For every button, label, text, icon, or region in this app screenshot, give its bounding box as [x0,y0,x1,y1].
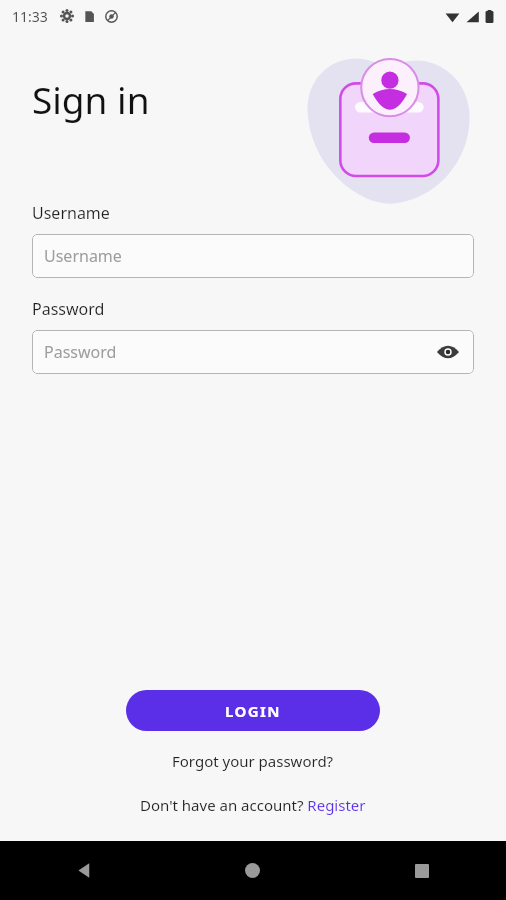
button[interactable]: Home [168,841,337,900]
button[interactable]: Password [32,330,474,374]
staticText: Sign in [32,74,150,124]
staticText: Forgot your password? [172,751,334,771]
staticText: Username [44,245,462,267]
staticText: Don't have an account? Register [140,795,366,815]
staticText: Password [32,298,105,320]
button[interactable]: Back [0,841,168,900]
staticText: LOGIN [225,701,281,721]
button[interactable]: Show password [434,338,462,366]
button[interactable]: Recent apps [337,841,506,900]
button[interactable]: LOGIN [126,690,380,731]
staticText: Password [44,341,434,363]
button[interactable]: Username [32,234,474,278]
button[interactable]: Don't have an account? Register [130,791,376,819]
staticText: Username [32,202,110,224]
button[interactable]: Forgot your password? [162,747,344,775]
staticText: 11:33 [12,7,48,26]
